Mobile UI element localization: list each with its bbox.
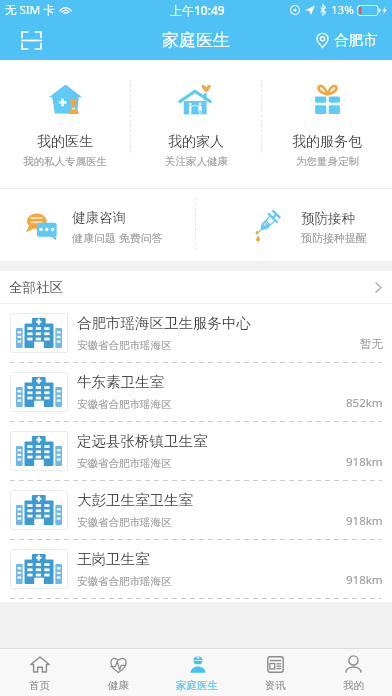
staticText: 定远县张桥镇卫生室 <box>77 432 208 450</box>
staticText: 852km <box>346 395 383 411</box>
staticText: 安徽省合肥市瑶海区 <box>77 339 172 352</box>
staticText: 918km <box>346 454 383 470</box>
staticText: 上午10:49 <box>170 2 225 18</box>
staticText: 我的私人专属医生 <box>23 155 107 168</box>
staticText: 家庭医生 <box>176 679 218 692</box>
button[interactable]: 健康咨询 <box>0 189 195 261</box>
staticText: 健康咨询 <box>72 209 126 226</box>
staticText: 暂无 <box>360 337 383 351</box>
staticText: 我的医生 <box>37 133 93 151</box>
button[interactable]: 首页 <box>0 649 79 696</box>
button[interactable]: 扫一扫 <box>12 21 50 59</box>
staticText: 关注家人健康 <box>165 155 228 168</box>
staticText: 大彭卫生室卫生室 <box>77 491 193 509</box>
button[interactable]: 牛东素卫生室 <box>0 363 392 421</box>
staticText: 无 SIM 卡 <box>5 2 55 18</box>
staticText: 健康问题 免费问答 <box>72 230 163 245</box>
staticText: 资讯 <box>265 679 286 692</box>
button[interactable]: 预防接种 <box>196 189 392 261</box>
button[interactable]: 我的医生 <box>0 60 130 188</box>
staticText: 13% <box>331 2 354 18</box>
button[interactable]: 全部社区 <box>0 271 392 303</box>
button[interactable]: 我的 <box>314 649 392 696</box>
staticText: 918km <box>346 572 383 588</box>
button[interactable]: 家庭医生 <box>158 649 236 696</box>
button[interactable]: 大彭卫生室卫生室 <box>0 481 392 539</box>
button[interactable]: 定远县张桥镇卫生室 <box>0 422 392 480</box>
staticText: 预防接种提醒 <box>301 231 367 245</box>
staticText: 安徽省合肥市瑶海区 <box>77 575 172 588</box>
staticText: 首页 <box>29 679 50 692</box>
staticText: 918km <box>346 513 383 529</box>
button[interactable]: 合肥市 <box>315 20 378 60</box>
staticText: 为您量身定制 <box>296 155 359 168</box>
button[interactable]: 我的家人 <box>131 60 261 188</box>
staticText: 合肥市 <box>334 31 378 49</box>
staticText: 安徽省合肥市瑶海区 <box>77 398 172 411</box>
button[interactable]: 资讯 <box>236 649 314 696</box>
staticText: 合肥市瑶海区卫生服务中心 <box>77 314 251 332</box>
staticText: 家庭医生 <box>162 30 230 51</box>
staticText: 健康 <box>108 679 129 692</box>
button[interactable]: 合肥市瑶海区卫生服务中心 <box>0 304 392 362</box>
staticText: 牛东素卫生室 <box>77 373 164 391</box>
staticText: 安徽省合肥市瑶海区 <box>77 457 172 470</box>
staticText: 我的家人 <box>168 133 224 151</box>
button[interactable]: 健康 <box>79 649 158 696</box>
staticText: 安徽省合肥市瑶海区 <box>77 516 172 529</box>
staticText: 我的 <box>343 679 364 692</box>
staticText: 全部社区 <box>9 279 63 296</box>
button[interactable]: 我的服务包 <box>262 60 392 188</box>
staticText: 王岗卫生室 <box>77 550 150 568</box>
button[interactable]: 王岗卫生室 <box>0 540 392 598</box>
staticText: 我的服务包 <box>292 133 362 151</box>
staticText: 预防接种 <box>301 210 355 227</box>
